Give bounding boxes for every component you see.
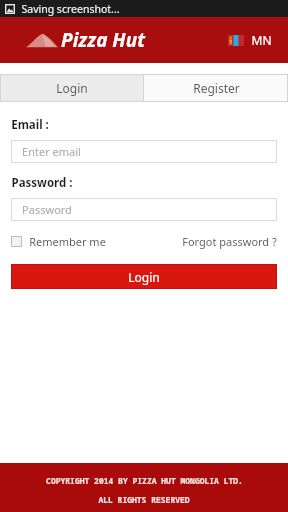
button[interactable]: Password <box>11 198 277 221</box>
staticText: COPYRIGHT 2014 BY PIZZA HUT MONGOLIA LTD… <box>46 475 243 486</box>
button[interactable]: Login <box>0 74 143 102</box>
staticText: Email : <box>11 117 49 133</box>
staticText: Login <box>56 80 88 96</box>
button[interactable]: Register <box>144 74 288 102</box>
button[interactable]: Forgot password ? <box>182 234 277 249</box>
button[interactable]: Remember me <box>11 234 106 249</box>
staticText: Password <box>22 202 72 217</box>
staticText: ALL RIGHTS RESERVED <box>98 494 190 505</box>
staticText: Login <box>128 269 160 285</box>
staticText: Pizza Hut <box>61 27 145 53</box>
staticText: Register <box>193 80 240 96</box>
staticText: Enter email <box>22 144 81 159</box>
button[interactable]: Enter email <box>11 140 277 163</box>
staticText: Saving screenshot... <box>21 2 120 16</box>
staticText: Remember me <box>29 234 106 249</box>
button[interactable]: Login <box>11 264 277 289</box>
staticText: Password : <box>11 175 73 191</box>
button[interactable]: Change language <box>225 29 275 51</box>
staticText: MN <box>251 32 272 48</box>
staticText: Forgot password ? <box>182 234 277 249</box>
